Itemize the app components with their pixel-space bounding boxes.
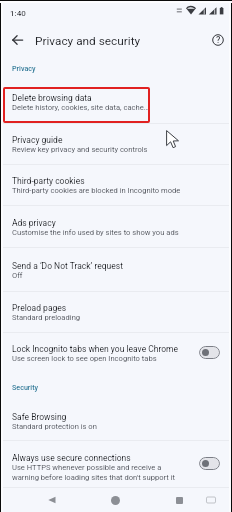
staticText: Send a ‘Do Not Track’ request: [12, 261, 123, 271]
staticText: Customise the info used by sites to show…: [12, 228, 179, 237]
button[interactable]: Ads privacy: [0, 206, 232, 247]
button[interactable]: Always use secure connections: [0, 441, 232, 487]
button[interactable]: Toggle Always use secure connections: [199, 457, 220, 470]
staticText: Standard protection is on: [12, 422, 97, 431]
staticText: Always use secure connections: [12, 453, 131, 463]
staticText: Lock Incognito tabs when you leave Chrom…: [12, 344, 179, 354]
staticText: Use HTTPS whenever possible and receive …: [12, 463, 188, 481]
staticText: Third-party cookies: [12, 176, 85, 186]
button[interactable]: Privacy guide: [0, 124, 232, 164]
staticText: Safe Browsing: [12, 412, 67, 422]
button[interactable]: Safe Browsing: [0, 409, 232, 440]
button[interactable]: Delete browsing data: [0, 87, 232, 123]
staticText: 1:40: [10, 9, 26, 18]
button[interactable]: Toggle Lock Incognito tabs when you leav…: [199, 346, 220, 359]
staticText: Standard preloading: [12, 313, 81, 322]
staticText: Delete history, cookies, site data, cach…: [12, 103, 149, 112]
button[interactable]: Send a ‘Do Not Track’ request: [0, 248, 232, 291]
button[interactable]: Switch keyboard: [199, 488, 223, 512]
staticText: Review key privacy and security controls: [12, 145, 148, 154]
button[interactable]: Third-party cookies: [0, 165, 232, 205]
staticText: Privacy guide: [12, 135, 63, 145]
button[interactable]: Back: [40, 488, 64, 512]
button[interactable]: Help and feedback: [206, 28, 230, 52]
staticText: ?: [216, 35, 221, 46]
staticText: Security: [12, 383, 39, 391]
staticText: Privacy: [12, 64, 36, 72]
button[interactable]: Recent apps: [167, 488, 191, 512]
staticText: Privacy and security: [35, 34, 141, 48]
staticText: Use screen lock to see open Incognito ta…: [12, 354, 157, 363]
button[interactable]: Home: [103, 488, 127, 512]
button[interactable]: Lock Incognito tabs when you leave Chrom…: [0, 333, 232, 373]
staticText: Ads privacy: [12, 218, 56, 228]
staticText: Off: [12, 271, 23, 280]
staticText: Third-party cookies are blocked in Incog…: [12, 186, 181, 195]
staticText: Delete browsing data: [12, 93, 92, 103]
button[interactable]: Navigate up: [5, 28, 29, 52]
staticText: Preload pages: [12, 303, 67, 313]
button[interactable]: Preload pages: [0, 292, 232, 332]
